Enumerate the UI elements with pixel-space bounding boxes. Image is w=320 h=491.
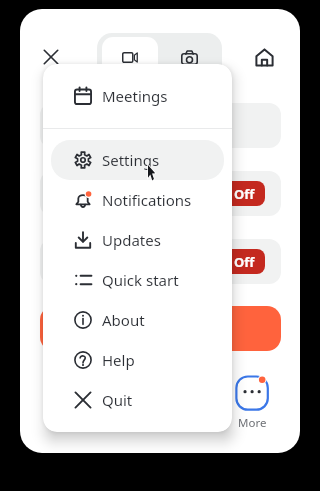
- button[interactable]: Off: [40, 239, 281, 284]
- button[interactable]: About: [51, 300, 224, 340]
- button[interactable]: Video: [102, 37, 158, 77]
- button[interactable]: Quick start: [51, 260, 224, 300]
- staticText: Notifications: [102, 190, 192, 210]
- staticText: Meetings: [102, 86, 168, 106]
- button[interactable]: Updates: [51, 220, 224, 260]
- button[interactable]: Close: [38, 44, 64, 70]
- button[interactable]: Notifications: [51, 180, 224, 220]
- button[interactable]: More: [221, 371, 283, 433]
- button[interactable]: Home: [251, 44, 277, 70]
- button[interactable]: Photo: [161, 37, 217, 77]
- button[interactable]: Off: [40, 171, 281, 216]
- staticText: Off: [234, 253, 255, 271]
- button[interactable]: Settings: [51, 140, 224, 180]
- staticText: Quick start: [102, 270, 179, 290]
- button[interactable]: [40, 306, 281, 351]
- staticText: More: [238, 415, 267, 431]
- staticText: Help: [102, 350, 135, 370]
- button[interactable]: Meetings: [51, 64, 224, 128]
- staticText: About: [102, 310, 145, 330]
- staticText: Updates: [102, 230, 161, 250]
- button[interactable]: Quit: [51, 380, 224, 420]
- staticText: Quit: [102, 390, 133, 410]
- staticText: Off: [234, 185, 255, 203]
- button[interactable]: [40, 103, 281, 148]
- button[interactable]: Help: [51, 340, 224, 380]
- staticText: Settings: [102, 150, 160, 170]
